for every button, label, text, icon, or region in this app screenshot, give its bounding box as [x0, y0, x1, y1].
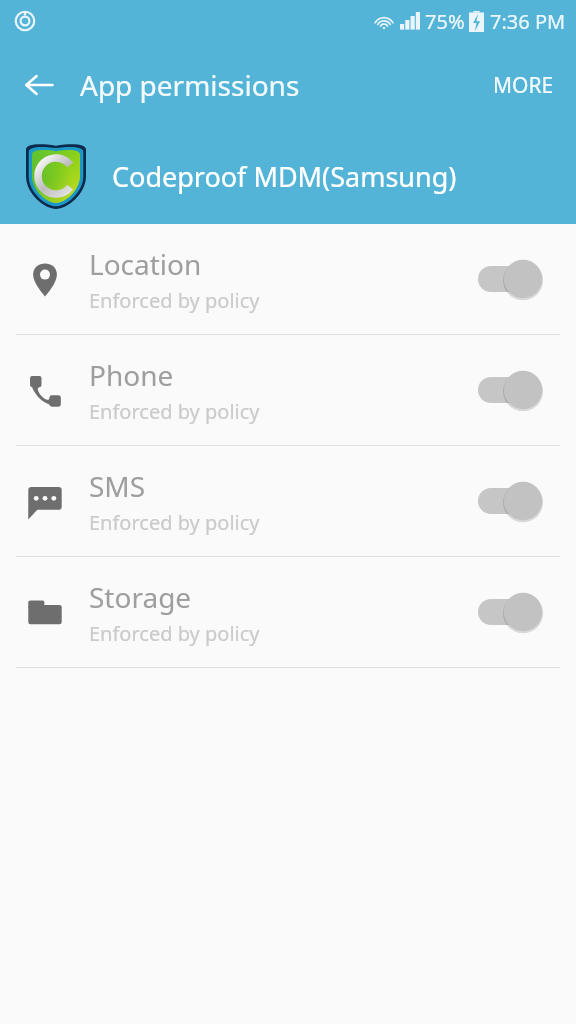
staticText: Enforced by policy: [89, 398, 260, 425]
staticText: Storage: [89, 578, 192, 616]
button[interactable]: Location: [0, 224, 576, 334]
button[interactable]: Phone permission toggle: [478, 364, 550, 416]
button[interactable]: SMS: [0, 446, 576, 556]
staticText: Enforced by policy: [89, 620, 260, 647]
staticText: 7:36 PM: [490, 8, 566, 35]
staticText: Codeproof MDM(Samsung): [112, 158, 457, 195]
staticText: App permissions: [80, 66, 300, 104]
staticText: Phone: [89, 356, 174, 394]
staticText: Enforced by policy: [89, 509, 260, 536]
button[interactable]: Back: [14, 60, 64, 110]
staticText: 75%: [425, 8, 465, 35]
button[interactable]: Storage: [0, 557, 576, 667]
button[interactable]: Codeproof MDM(Samsung): [0, 128, 576, 224]
staticText: Location: [89, 245, 202, 283]
button[interactable]: Location permission toggle: [478, 253, 550, 305]
staticText: Enforced by policy: [89, 287, 260, 314]
button[interactable]: MORE: [479, 61, 568, 110]
staticText: SMS: [89, 467, 146, 505]
button[interactable]: SMS permission toggle: [478, 475, 550, 527]
staticText: MORE: [493, 71, 554, 100]
button[interactable]: Storage permission toggle: [478, 586, 550, 638]
button[interactable]: Phone: [0, 335, 576, 445]
